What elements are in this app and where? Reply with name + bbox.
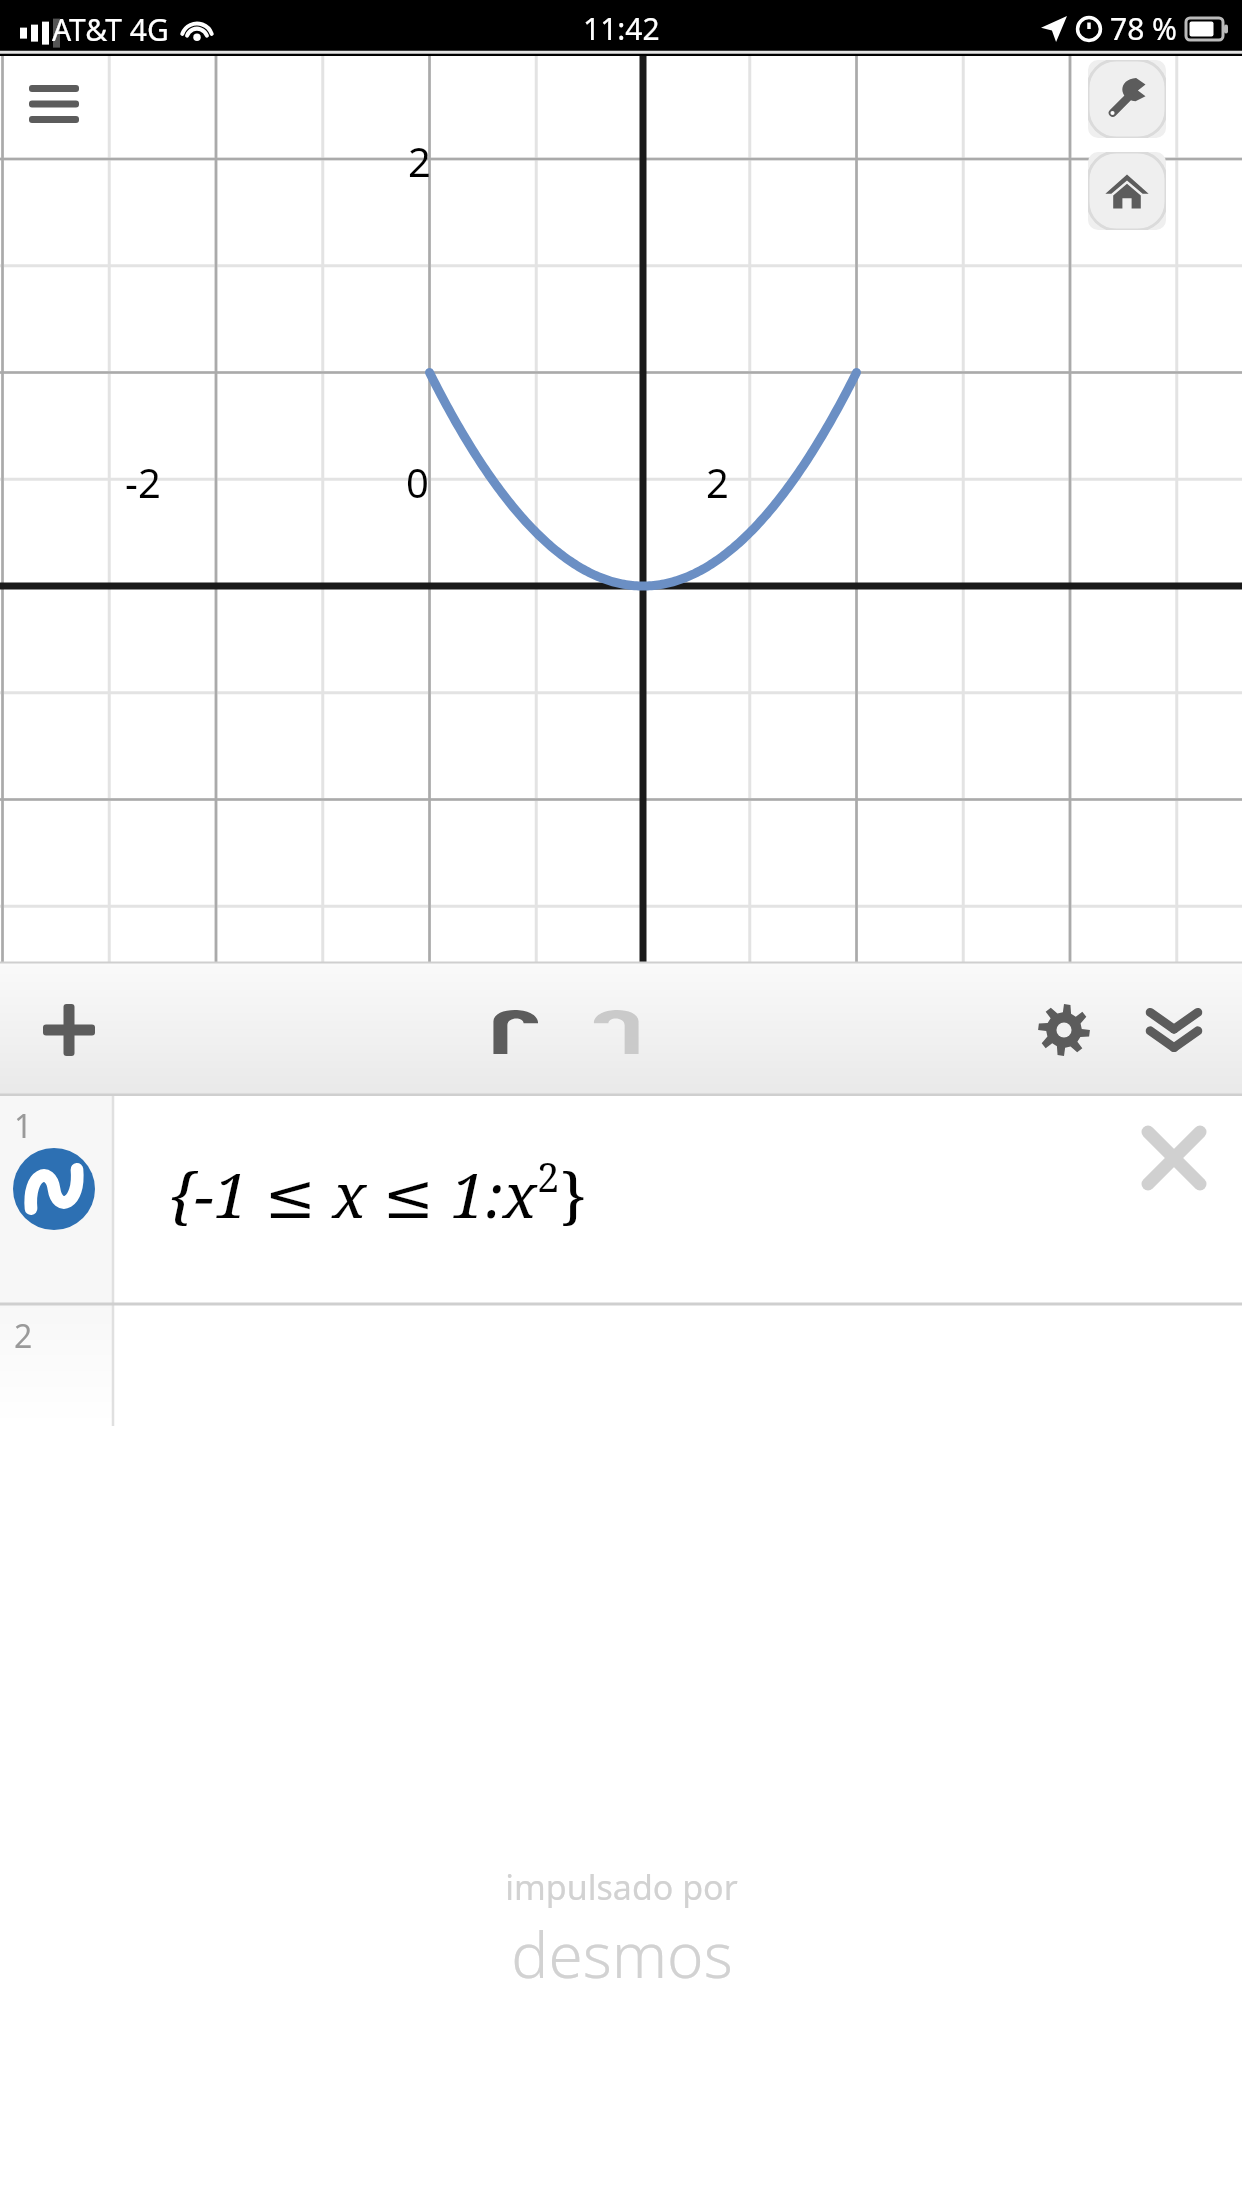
staticText: } xyxy=(560,1152,587,1236)
button[interactable]: Toggle graph xyxy=(13,1148,95,1230)
staticText: -2 xyxy=(125,455,161,509)
staticText: impulsado por xyxy=(505,1864,738,1910)
button[interactable]: Menu xyxy=(20,70,88,138)
button[interactable]: 1 xyxy=(0,1096,1242,1304)
staticText: 2 xyxy=(706,455,729,509)
staticText: {−1 ≤ x ≤ 1:x xyxy=(168,1152,537,1236)
staticText: desmos xyxy=(511,1912,733,1996)
button[interactable]: 2 xyxy=(0,1304,1242,1426)
button[interactable]: Redo xyxy=(570,994,670,1066)
staticText: 2 xyxy=(14,1314,33,1358)
staticText: 78 % xyxy=(1110,8,1178,49)
button[interactable]: Settings xyxy=(1016,994,1112,1066)
button[interactable]: Delete expression xyxy=(1126,1110,1222,1206)
button[interactable]: Collapse keypad xyxy=(1122,994,1226,1066)
staticText: 1 xyxy=(14,1104,33,1148)
staticText: 0 xyxy=(406,455,429,509)
button[interactable]: Undo xyxy=(462,994,562,1066)
button[interactable]: Add expression xyxy=(14,994,124,1066)
staticText: 2 xyxy=(408,134,431,188)
staticText: 2 xyxy=(537,1149,560,1203)
staticText: AT&T 4G xyxy=(52,9,169,50)
button[interactable]: Home xyxy=(1088,152,1166,230)
staticText: 11:42 xyxy=(583,8,660,49)
button[interactable]: Graph settings xyxy=(1088,60,1166,138)
